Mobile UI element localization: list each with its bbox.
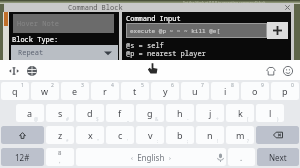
staticText: s [58, 107, 63, 119]
staticText: z [58, 129, 63, 141]
button[interactable]: x [76, 126, 104, 144]
staticText: Block Type: [12, 35, 59, 45]
button[interactable]: Change language [24, 63, 39, 78]
button[interactable]: execute @p ~ ~ ~ kill @e[ [127, 24, 266, 37]
button[interactable]: Period [228, 148, 255, 166]
button[interactable]: w [31, 82, 59, 100]
staticText: 1 [21, 82, 24, 89]
staticText: 5 [141, 82, 144, 89]
staticText: b [177, 129, 183, 141]
staticText: @s = self [126, 41, 164, 51]
staticText: 6 [171, 82, 174, 89]
staticText: 2 [51, 82, 54, 89]
staticText: p [282, 85, 288, 97]
button[interactable]: h [166, 104, 194, 122]
staticText: 3 [81, 82, 84, 89]
staticText: 8 [231, 82, 234, 89]
button[interactable]: e [61, 82, 89, 100]
button[interactable]: Shift [1, 126, 44, 144]
button[interactable]: Hover Note [13, 14, 114, 33]
staticText: x [88, 129, 93, 141]
button[interactable]: Next [257, 148, 299, 166]
staticText: ( [247, 116, 249, 122]
staticText: t [133, 85, 137, 97]
button[interactable]: r [91, 82, 119, 100]
staticText: , [59, 157, 61, 165]
staticText: r [103, 85, 107, 97]
button[interactable]: Emoji [281, 64, 294, 77]
button[interactable]: v [136, 126, 164, 144]
staticText: w [41, 85, 49, 97]
staticText: g [147, 107, 153, 119]
button[interactable]: y [151, 82, 179, 100]
button[interactable]: 12# [1, 148, 44, 166]
staticText: & [155, 116, 159, 122]
staticText: _ [127, 116, 129, 122]
staticText: Command Input [126, 14, 181, 24]
staticText: k [238, 107, 243, 119]
button[interactable]: m [226, 126, 254, 144]
staticText: + [216, 116, 219, 122]
staticText: 8 [58, 149, 62, 157]
button[interactable]: q [1, 82, 29, 100]
button[interactable]: c [106, 126, 134, 144]
staticText: 12# [15, 152, 30, 163]
staticText: v [148, 129, 153, 141]
staticText: Hover Note [17, 19, 59, 29]
staticText: " [97, 138, 99, 144]
button[interactable]: Themes [264, 64, 277, 77]
button[interactable]: d [76, 104, 104, 122]
staticText: @ [34, 116, 39, 122]
staticText: m [236, 129, 245, 141]
staticText: 0 [291, 82, 294, 89]
button[interactable]: Repeat [11, 45, 118, 60]
button[interactable]: Close [284, 4, 291, 11]
staticText: execute @p ~ ~ ~ kill @e[ [130, 27, 221, 35]
staticText: ! [217, 138, 219, 144]
button[interactable]: u [181, 82, 209, 100]
staticText: # [66, 116, 69, 122]
staticText: d [87, 107, 93, 119]
button[interactable]: b [166, 126, 194, 144]
staticText: . [240, 152, 243, 163]
button[interactable]: s [46, 104, 74, 122]
button[interactable]: i [211, 82, 239, 100]
button[interactable]: l [256, 104, 284, 122]
staticText: l [269, 107, 272, 119]
staticText: a [27, 107, 33, 119]
button[interactable]: j [196, 104, 224, 122]
staticText: ) [277, 116, 279, 122]
staticText: j [209, 107, 212, 119]
button[interactable]: n [196, 126, 224, 144]
staticText: @p = nearest player [126, 49, 206, 59]
staticText: i [224, 85, 227, 97]
button[interactable]: t [121, 82, 149, 100]
button[interactable]: z [46, 126, 74, 144]
staticText: * [66, 138, 69, 144]
staticText: Command Block [68, 3, 123, 12]
staticText: 4 [111, 82, 114, 89]
button[interactable]: ‹ [76, 148, 226, 166]
staticText: › [169, 154, 171, 162]
staticText: u [192, 85, 198, 97]
button[interactable]: p [271, 82, 299, 100]
button[interactable]: Move cursor [7, 64, 20, 77]
staticText: - [187, 116, 189, 122]
button[interactable]: f [106, 104, 134, 122]
button[interactable]: k [226, 104, 254, 122]
staticText: y [163, 85, 168, 97]
staticText: e [72, 85, 78, 97]
staticText: ? [247, 138, 249, 144]
button[interactable]: Add [267, 22, 288, 39]
staticText: ' [127, 138, 129, 144]
button[interactable]: a [16, 104, 44, 122]
button[interactable]: o [241, 82, 269, 100]
staticText: 7 [201, 82, 204, 89]
button[interactable]: g [136, 104, 164, 122]
button[interactable]: Backspace [256, 126, 299, 144]
staticText: English [133, 152, 169, 163]
staticText: f [118, 107, 122, 119]
staticText: n [207, 129, 213, 141]
staticText: ; [187, 138, 189, 144]
button[interactable]: Comma [46, 148, 74, 166]
